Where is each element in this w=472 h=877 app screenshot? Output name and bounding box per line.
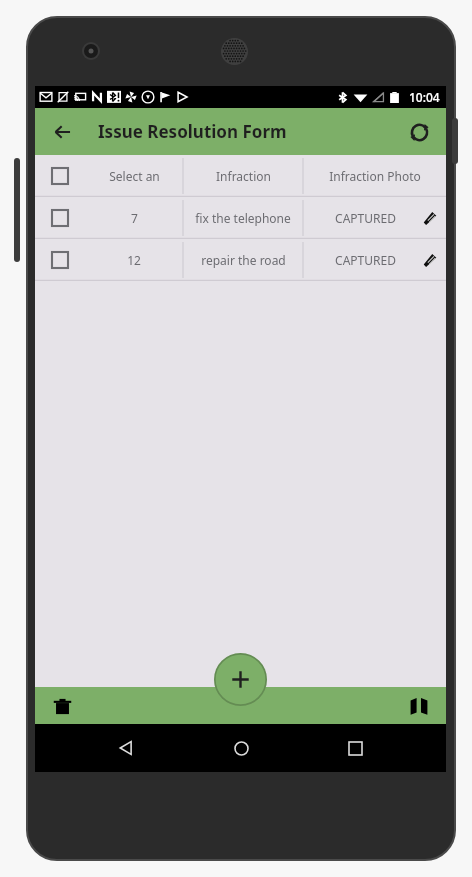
button[interactable]: Delete bbox=[45, 689, 79, 723]
staticText: Issue Resolution Form bbox=[98, 120, 287, 143]
staticText: Infraction bbox=[216, 168, 271, 184]
staticText: CAPTURED bbox=[335, 252, 396, 268]
staticText: Select an bbox=[109, 168, 160, 184]
button[interactable]: Edit bbox=[414, 203, 444, 233]
button[interactable]: 7 bbox=[35, 197, 446, 239]
button[interactable]: 12 bbox=[35, 239, 446, 281]
staticText: 10:04 bbox=[409, 89, 440, 105]
button[interactable]: Edit bbox=[414, 245, 444, 275]
staticText: 12 bbox=[127, 252, 141, 268]
staticText: repair the road bbox=[201, 252, 286, 268]
button[interactable]: Back bbox=[102, 724, 150, 772]
button[interactable]: Add bbox=[214, 653, 267, 706]
button[interactable]: Back bbox=[44, 113, 82, 151]
button[interactable]: Recent apps bbox=[331, 724, 379, 772]
button[interactable]: Select an bbox=[35, 155, 446, 197]
button[interactable]: Home bbox=[217, 724, 265, 772]
button[interactable]: Map bbox=[402, 689, 436, 723]
staticText: Infraction Photo bbox=[329, 168, 421, 184]
button[interactable]: Refresh bbox=[400, 113, 438, 151]
staticText: fix the telephone bbox=[195, 210, 291, 226]
staticText: 7 bbox=[131, 210, 138, 226]
staticText: CAPTURED bbox=[335, 210, 396, 226]
